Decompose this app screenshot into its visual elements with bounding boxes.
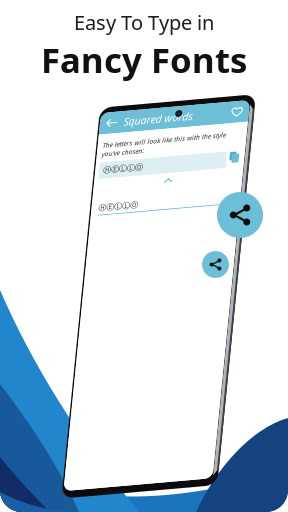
button[interactable]: Share bbox=[217, 192, 263, 238]
staticText: The letters will look like this with the… bbox=[6, 34, 130, 52]
staticText: Easy To Type in bbox=[74, 9, 214, 36]
staticText: Fancy Fonts bbox=[41, 37, 247, 83]
button[interactable]: Share options bbox=[202, 251, 229, 278]
button[interactable]: Favourite bbox=[133, 10, 145, 22]
staticText: Squared words bbox=[25, 9, 95, 24]
staticText: ⒽⒺⓁⓁⓄ bbox=[9, 60, 49, 69]
